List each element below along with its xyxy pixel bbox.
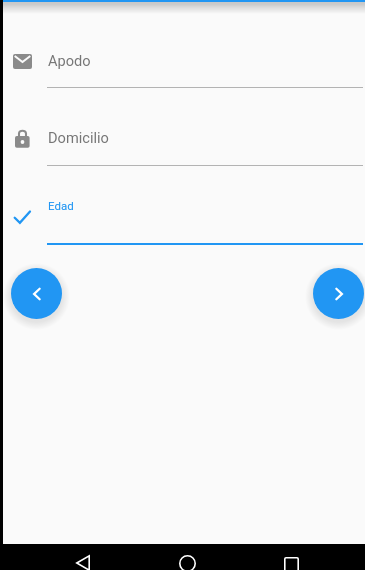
- button[interactable]: Back: [68, 550, 98, 570]
- staticText: Edad: [48, 199, 74, 212]
- button[interactable]: Next: [313, 268, 364, 319]
- button[interactable]: Recents: [276, 551, 306, 570]
- button[interactable]: Home: [172, 550, 202, 570]
- button[interactable]: Apodo: [47, 51, 363, 86]
- staticText: Domicilio: [48, 129, 109, 146]
- button[interactable]: Edad: [47, 198, 363, 243]
- button[interactable]: Domicilio: [47, 128, 363, 163]
- staticText: Apodo: [48, 52, 91, 69]
- button[interactable]: Previous: [11, 268, 62, 319]
